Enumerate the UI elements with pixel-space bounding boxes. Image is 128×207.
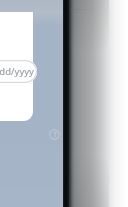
button[interactable]: mm/dd/yyyy <box>0 60 37 83</box>
staticText: mm/dd/yyyy <box>0 65 34 78</box>
button[interactable]: Help <box>49 129 60 140</box>
staticText: ? <box>53 130 57 140</box>
